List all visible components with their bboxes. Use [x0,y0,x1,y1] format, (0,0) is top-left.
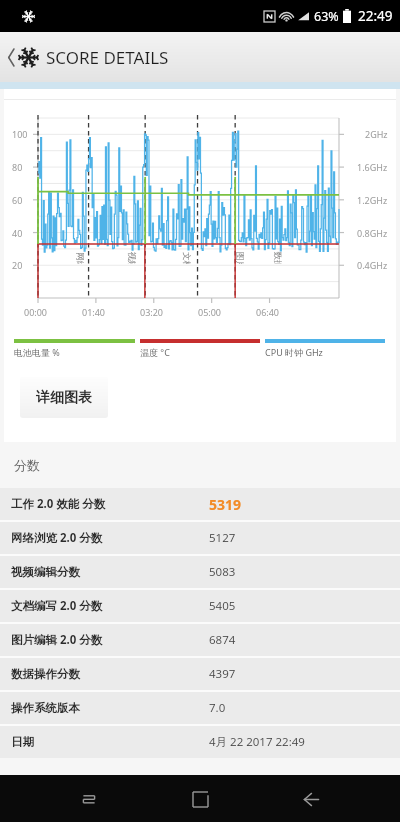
staticText: CPU 时钟 GHz [265,346,323,358]
staticText: 06:40 [256,306,280,318]
staticText: 图片编辑 2.0 [234,252,246,264]
staticText: 1.2GHz [357,194,388,206]
staticText: 63% [314,8,339,25]
button[interactable]: 工作 2.0 效能 分数 [0,488,400,520]
staticText: 视频编辑 [125,251,136,263]
staticText: 数据操作 [271,251,282,263]
staticText: 详细图表 [36,389,92,407]
staticText: 分数 [14,457,40,473]
staticText: 80 [12,161,23,173]
staticText: 工作 2.0 效能 分数 [11,496,209,512]
staticText: 4月 22 2017 22:49 [209,734,305,750]
button[interactable]: 详细图表 [20,377,108,418]
button[interactable]: Back [2,40,175,75]
staticText: 文档编写 2.0 分数 [11,598,209,614]
staticText: 03:20 [140,306,164,318]
staticText: 视频编辑分数 [11,565,209,579]
staticText: 22:49 [358,7,393,25]
staticText: 100 [12,128,28,140]
staticText: 文档编写 2.0 [181,252,193,264]
staticText: 01:40 [82,306,106,318]
button[interactable]: 文档编写 2.0 分数 [0,590,400,622]
staticText: 2GHz [365,128,388,140]
button[interactable]: Recents [73,783,105,815]
staticText: 7.0 [209,700,226,716]
staticText: 6874 [209,632,236,648]
staticText: 20 [12,259,23,271]
staticText: 0.4GHz [357,259,388,271]
button[interactable]: Back [295,783,327,815]
button[interactable]: Home [184,783,216,815]
button[interactable]: 操作系统版本 [0,692,400,724]
staticText: 数据操作分数 [11,667,209,681]
staticText: 5319 [209,495,242,514]
staticText: 温度 °C [140,346,170,358]
staticText: 60 [12,194,23,206]
button[interactable]: 日期 [0,726,400,758]
staticText: 05:00 [198,306,222,318]
staticText: 日期 [11,735,209,749]
staticText: 网络浏览 2.0 分数 [11,530,209,546]
button[interactable]: 视频编辑分数 [0,556,400,588]
button[interactable]: 数据操作分数 [0,658,400,690]
staticText: 1.6GHz [357,161,388,173]
staticText: 5083 [209,564,236,580]
staticText: SCORE DETAILS [46,46,169,69]
button[interactable]: 图片编辑 2.0 分数 [0,624,400,656]
staticText: 4397 [209,666,236,682]
button[interactable]: 网络浏览 2.0 分数 [0,522,400,554]
staticText: 图片编辑 2.0 分数 [11,632,209,648]
staticText: 00:00 [24,306,48,318]
staticText: 40 [12,227,23,239]
staticText: 0.8GHz [357,227,388,239]
staticText: 网络浏览 2.0 [74,252,86,264]
staticText: 5127 [209,530,236,546]
staticText: 操作系统版本 [11,701,209,715]
staticText: 电池电量 % [14,346,60,358]
staticText: 5405 [209,598,236,614]
